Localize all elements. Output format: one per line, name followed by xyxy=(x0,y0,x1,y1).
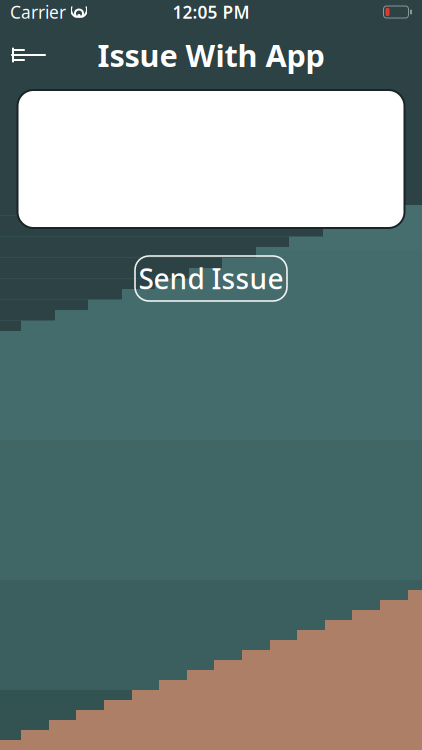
staticText: 12:05 PM xyxy=(172,0,249,23)
button[interactable]: Describe the issue xyxy=(17,90,404,228)
button[interactable]: Back xyxy=(0,32,58,78)
staticText: Carrier xyxy=(10,0,66,23)
button[interactable]: Send Issue xyxy=(135,256,287,301)
staticText: Issue With App xyxy=(97,35,324,75)
staticText: Send Issue xyxy=(138,260,283,297)
